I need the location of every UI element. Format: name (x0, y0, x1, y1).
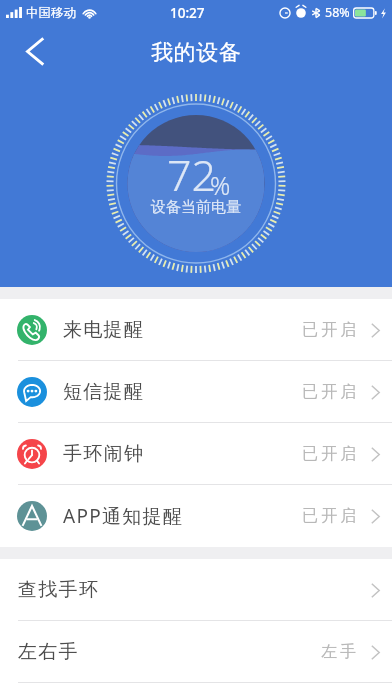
staticText: 已开启 (302, 506, 360, 526)
staticText: APP通知提醒 (63, 503, 184, 529)
button[interactable]: Back (12, 26, 57, 71)
staticText: 左右手 (18, 640, 79, 664)
staticText: 来电提醒 (63, 318, 145, 342)
button[interactable]: 查找手环 (0, 559, 392, 621)
button[interactable]: 短信提醒 (0, 361, 392, 423)
button[interactable]: 手环闹钟 (0, 423, 392, 485)
staticText: 我的设备 (151, 39, 242, 67)
staticText: 短信提醒 (63, 380, 145, 404)
staticText: 左手 (321, 642, 360, 662)
staticText: 查找手环 (18, 578, 100, 602)
button[interactable]: 左右手 (0, 621, 392, 683)
staticText: 已开启 (302, 444, 360, 464)
staticText: 10:27 (170, 4, 205, 22)
button[interactable]: 来电提醒 (0, 299, 392, 361)
staticText: 设备当前电量 (151, 198, 241, 217)
staticText: % (210, 168, 231, 202)
staticText: 手环闹钟 (63, 442, 145, 466)
button[interactable]: APP通知提醒 (0, 485, 392, 547)
staticText: 已开启 (302, 320, 360, 340)
staticText: 中国移动 (26, 5, 76, 21)
staticText: 已开启 (302, 382, 360, 402)
staticText: 72 (167, 145, 217, 204)
staticText: 58% (325, 4, 350, 21)
